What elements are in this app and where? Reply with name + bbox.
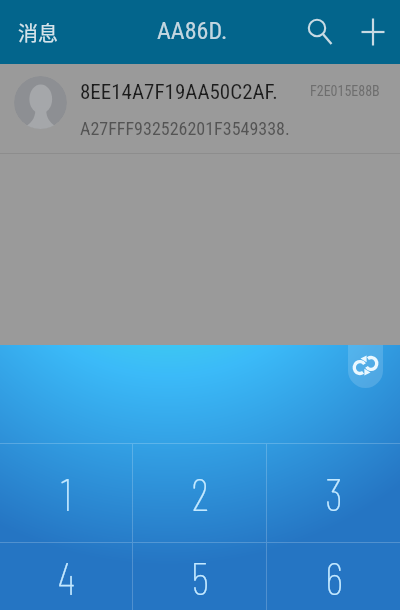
staticText: 消息: [18, 18, 58, 47]
staticText: 5: [191, 550, 209, 604]
staticText: 2: [191, 466, 209, 520]
button[interactable]: Search: [293, 4, 349, 60]
staticText: 8EE14A7F19AA50C2AF.: [80, 80, 278, 105]
button[interactable]: 8EE14A7F19AA50C2AF.: [0, 64, 400, 153]
button[interactable]: 1: [0, 444, 132, 542]
button[interactable]: 5: [133, 543, 266, 610]
staticText: 3: [325, 466, 343, 520]
staticText: 1: [61, 466, 72, 520]
button[interactable]: 2: [133, 444, 266, 542]
button[interactable]: Add: [345, 4, 400, 60]
button[interactable]: 3: [267, 444, 400, 542]
staticText: 6: [325, 550, 343, 604]
staticText: 4: [58, 550, 75, 604]
button[interactable]: 4: [0, 543, 132, 610]
staticText: AA86D.: [157, 17, 228, 45]
button[interactable]: 6: [267, 543, 400, 610]
button[interactable]: Switch input: [348, 345, 383, 388]
staticText: A27FFF932526201F3549338.: [80, 118, 290, 139]
staticText: F2E015E88B: [310, 83, 380, 99]
button[interactable]: 消息: [6, 9, 70, 56]
